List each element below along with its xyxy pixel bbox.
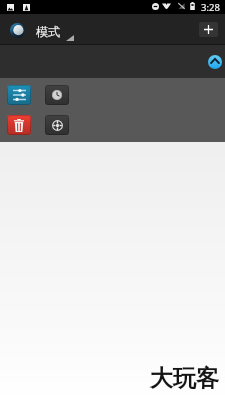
staticText: 模式	[36, 24, 60, 39]
button[interactable]: Collapse	[208, 55, 222, 69]
button[interactable]: Delete	[7, 115, 31, 135]
button[interactable]: 模式	[4, 14, 78, 44]
button[interactable]: Calibrate	[45, 115, 69, 135]
button[interactable]: Equalizer	[7, 85, 31, 105]
staticText: 大玩客	[150, 364, 219, 393]
button[interactable]: Add	[199, 22, 218, 37]
button[interactable]: Timer	[45, 85, 69, 105]
staticText: 3:28	[201, 1, 220, 14]
